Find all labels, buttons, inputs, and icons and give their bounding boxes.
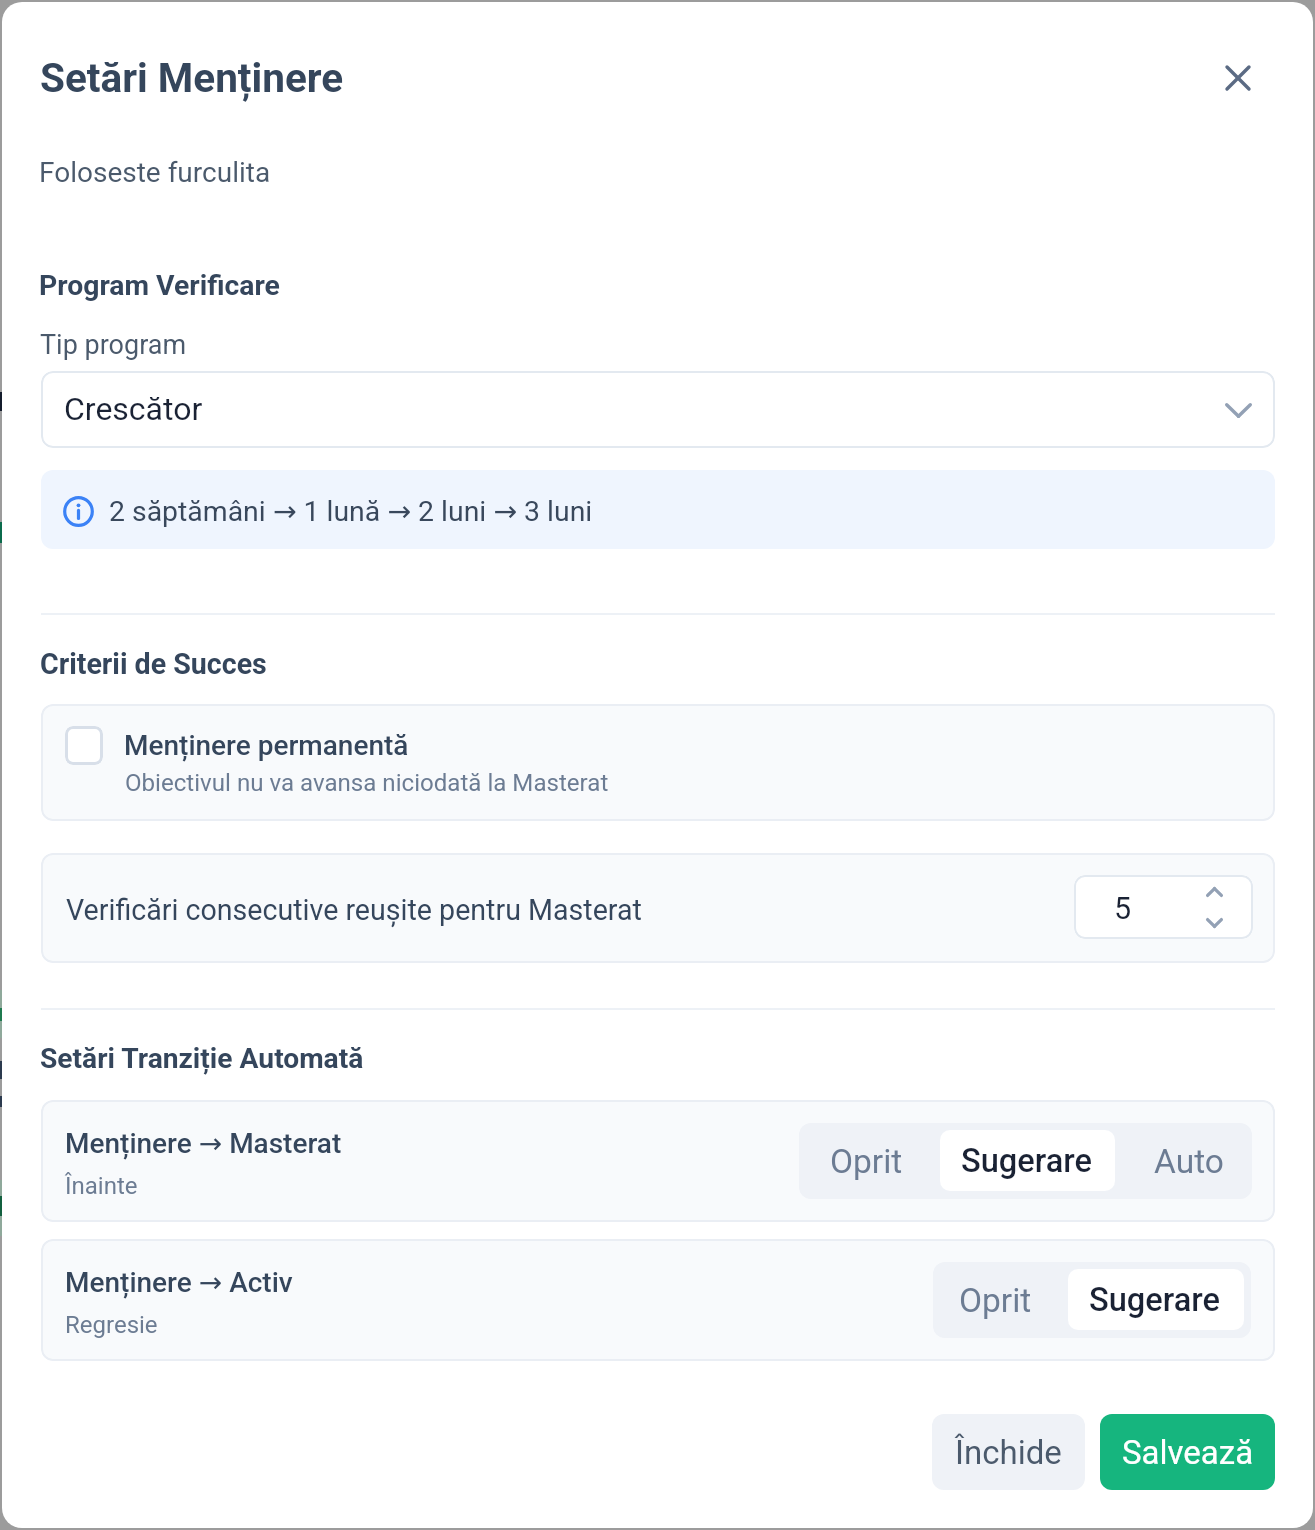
staticText: Menținere → Activ bbox=[65, 1266, 293, 1299]
staticText: 2 săptămâni → 1 lună → 2 luni → 3 luni bbox=[109, 495, 593, 528]
staticText: Menținere permanentă bbox=[124, 729, 409, 762]
button[interactable]: Sugerare bbox=[940, 1130, 1115, 1191]
staticText: Foloseste furculita bbox=[39, 156, 271, 189]
button[interactable]: Sugerare bbox=[1068, 1269, 1244, 1330]
staticText: Regresie bbox=[65, 1311, 158, 1339]
staticText: Oprit bbox=[830, 1142, 903, 1181]
button[interactable]: Close bbox=[1208, 48, 1268, 108]
staticText: Închide bbox=[955, 1433, 1062, 1472]
staticText: Criterii de Succes bbox=[40, 647, 267, 681]
staticText: Setări Menținere bbox=[40, 54, 344, 101]
staticText: Oprit bbox=[959, 1281, 1032, 1320]
button[interactable]: Oprit bbox=[940, 1269, 1068, 1330]
staticText: Setări Tranziție Automată bbox=[40, 1042, 364, 1075]
staticText: Program Verificare bbox=[39, 269, 280, 302]
staticText: Menținere → Masterat bbox=[65, 1127, 342, 1160]
button[interactable]: Decrease bbox=[1192, 907, 1237, 939]
staticText: Auto bbox=[1154, 1142, 1224, 1181]
staticText: Tip program bbox=[40, 329, 187, 361]
button[interactable]: Oprit bbox=[806, 1130, 940, 1191]
staticText: Verificări consecutive reușite pentru Ma… bbox=[66, 893, 642, 927]
staticText: Sugerare bbox=[961, 1142, 1092, 1180]
staticText: Obiectivul nu va avansa niciodată la Mas… bbox=[125, 769, 609, 797]
button[interactable]: Salvează bbox=[1100, 1414, 1275, 1490]
staticText: Crescător bbox=[64, 390, 203, 428]
button[interactable]: Închide bbox=[932, 1414, 1085, 1490]
staticText: Salvează bbox=[1122, 1433, 1254, 1472]
button[interactable]: Menținere permanentă bbox=[41, 704, 1275, 821]
button[interactable]: Auto bbox=[1115, 1130, 1245, 1191]
staticText: Sugerare bbox=[1089, 1281, 1220, 1319]
button[interactable]: Increase bbox=[1192, 875, 1237, 907]
button[interactable]: Crescător bbox=[41, 371, 1275, 448]
staticText: Înainte bbox=[65, 1172, 138, 1200]
staticText: 5 bbox=[1114, 891, 1132, 927]
